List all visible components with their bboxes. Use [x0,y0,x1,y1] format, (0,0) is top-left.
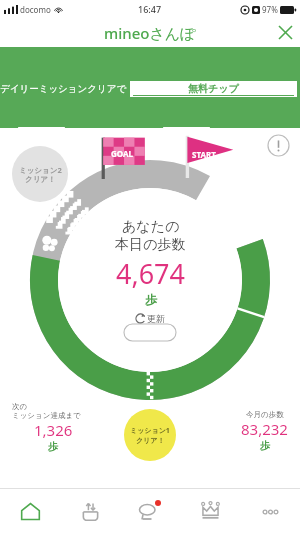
button[interactable]: 更新 [128,311,173,326]
staticText: mineoさんぽ [104,23,196,43]
staticText: あなたの [122,218,180,236]
staticText: ミッション2 [19,165,62,175]
staticText: 歩 [48,440,58,453]
staticText: デイリーミッションクリアで [0,83,127,95]
staticText: 今月の歩数 [246,410,284,419]
button[interactable]: クリア！ [9,127,145,128]
button[interactable]: More [240,489,300,534]
staticText: 4,674 [116,255,186,292]
staticText: 歩 [260,439,270,452]
button[interactable]: Rank [180,489,240,534]
button[interactable]: ミッション1 [124,409,176,461]
staticText: 83,232 [241,419,288,439]
staticText: 97% [262,4,278,15]
staticText: クリア！ [136,436,165,445]
button[interactable]: 6,000 [154,127,291,128]
button[interactable]: Close [271,18,300,47]
staticText: 1,326 [34,420,73,440]
staticText: 本日の歩数 [115,236,186,254]
staticText: 更新 [147,313,165,324]
button[interactable]: Home [0,489,60,534]
staticText: docomo [20,4,51,15]
staticText: GOAL [111,148,133,159]
staticText: ミッション1 [130,426,170,436]
button[interactable]: Information [267,134,290,157]
button[interactable]: Transfer [60,489,120,534]
staticText: 16:47 [138,3,162,15]
staticText: START [192,149,216,160]
button[interactable]: ミッション2 [12,146,68,202]
staticText: クリア！ [25,175,56,184]
staticText: 無料チップ [188,82,239,95]
staticText: 歩 [145,292,157,307]
button[interactable]: Chat [120,489,180,534]
staticText: 次の [12,402,28,411]
staticText: ミッション達成まで [12,411,81,420]
